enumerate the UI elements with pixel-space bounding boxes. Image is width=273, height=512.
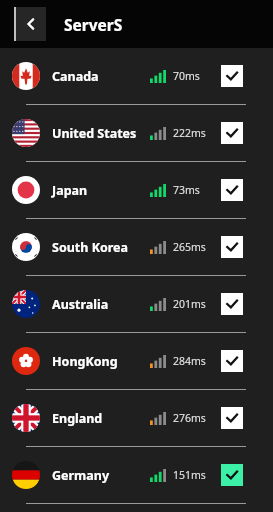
staticText: Germany (52, 467, 110, 484)
button[interactable]: Select (221, 179, 243, 201)
button[interactable]: Selected (221, 464, 243, 486)
button[interactable]: Select (221, 407, 243, 429)
staticText: England (52, 410, 103, 427)
button[interactable]: South Korea (0, 219, 273, 275)
button[interactable]: Germany (0, 447, 273, 503)
staticText: 222ms (173, 126, 206, 140)
staticText: 70ms (173, 69, 200, 83)
staticText: 284ms (173, 354, 206, 368)
staticText: United States (52, 125, 137, 142)
button[interactable]: HongKong (0, 333, 273, 389)
button[interactable]: Select (221, 350, 243, 372)
button[interactable]: Select (221, 293, 243, 315)
staticText: ServerS (64, 14, 123, 35)
button[interactable]: United States (0, 105, 273, 161)
button[interactable]: England (0, 390, 273, 446)
staticText: Australia (52, 296, 109, 313)
button[interactable]: Select (221, 122, 243, 144)
staticText: 151ms (173, 468, 206, 482)
staticText: 73ms (173, 183, 200, 197)
button[interactable]: Back (14, 7, 46, 41)
button[interactable]: Australia (0, 276, 273, 332)
staticText: 276ms (173, 411, 206, 425)
button[interactable]: Japan (0, 162, 273, 218)
staticText: South Korea (52, 239, 129, 256)
staticText: 201ms (173, 297, 206, 311)
button[interactable]: Select (221, 65, 243, 87)
button[interactable]: Select (221, 236, 243, 258)
staticText: Canada (52, 68, 99, 85)
staticText: HongKong (52, 353, 118, 370)
button[interactable]: Canada (0, 48, 273, 104)
staticText: 265ms (173, 240, 206, 254)
staticText: Japan (52, 182, 88, 199)
